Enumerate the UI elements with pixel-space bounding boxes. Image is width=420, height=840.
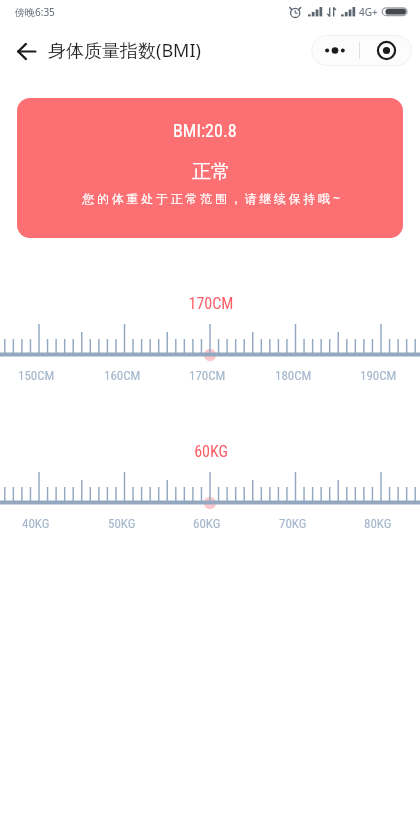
staticText: 170CM bbox=[189, 368, 226, 383]
staticText: 傍晚6:35 bbox=[15, 5, 55, 19]
staticText: 40KG bbox=[22, 516, 50, 531]
staticText: 150CM bbox=[18, 368, 55, 383]
staticText: 170CM bbox=[1, 294, 420, 313]
staticText: 正常 bbox=[192, 160, 230, 184]
staticText: 190CM bbox=[360, 368, 397, 383]
staticText: 70KG bbox=[279, 516, 307, 531]
staticText: 180CM bbox=[275, 368, 312, 383]
staticText: 160CM bbox=[104, 368, 141, 383]
staticText: 身体质量指数(BMI) bbox=[48, 38, 201, 63]
staticText: BMI:20.8 bbox=[173, 120, 237, 141]
staticText: 4G+ bbox=[359, 5, 378, 19]
staticText: 您的体重处于正常范围，请继续保持哦~ bbox=[82, 190, 343, 206]
button[interactable]: More options bbox=[311, 35, 359, 66]
button[interactable]: Close bbox=[360, 35, 412, 66]
button[interactable]: Back bbox=[6, 31, 47, 72]
staticText: 60KG bbox=[193, 516, 221, 531]
button[interactable]: BMI:20.8 bbox=[17, 98, 403, 238]
staticText: 80KG bbox=[364, 516, 392, 531]
staticText: 50KG bbox=[108, 516, 136, 531]
staticText: 60KG bbox=[1, 442, 420, 461]
